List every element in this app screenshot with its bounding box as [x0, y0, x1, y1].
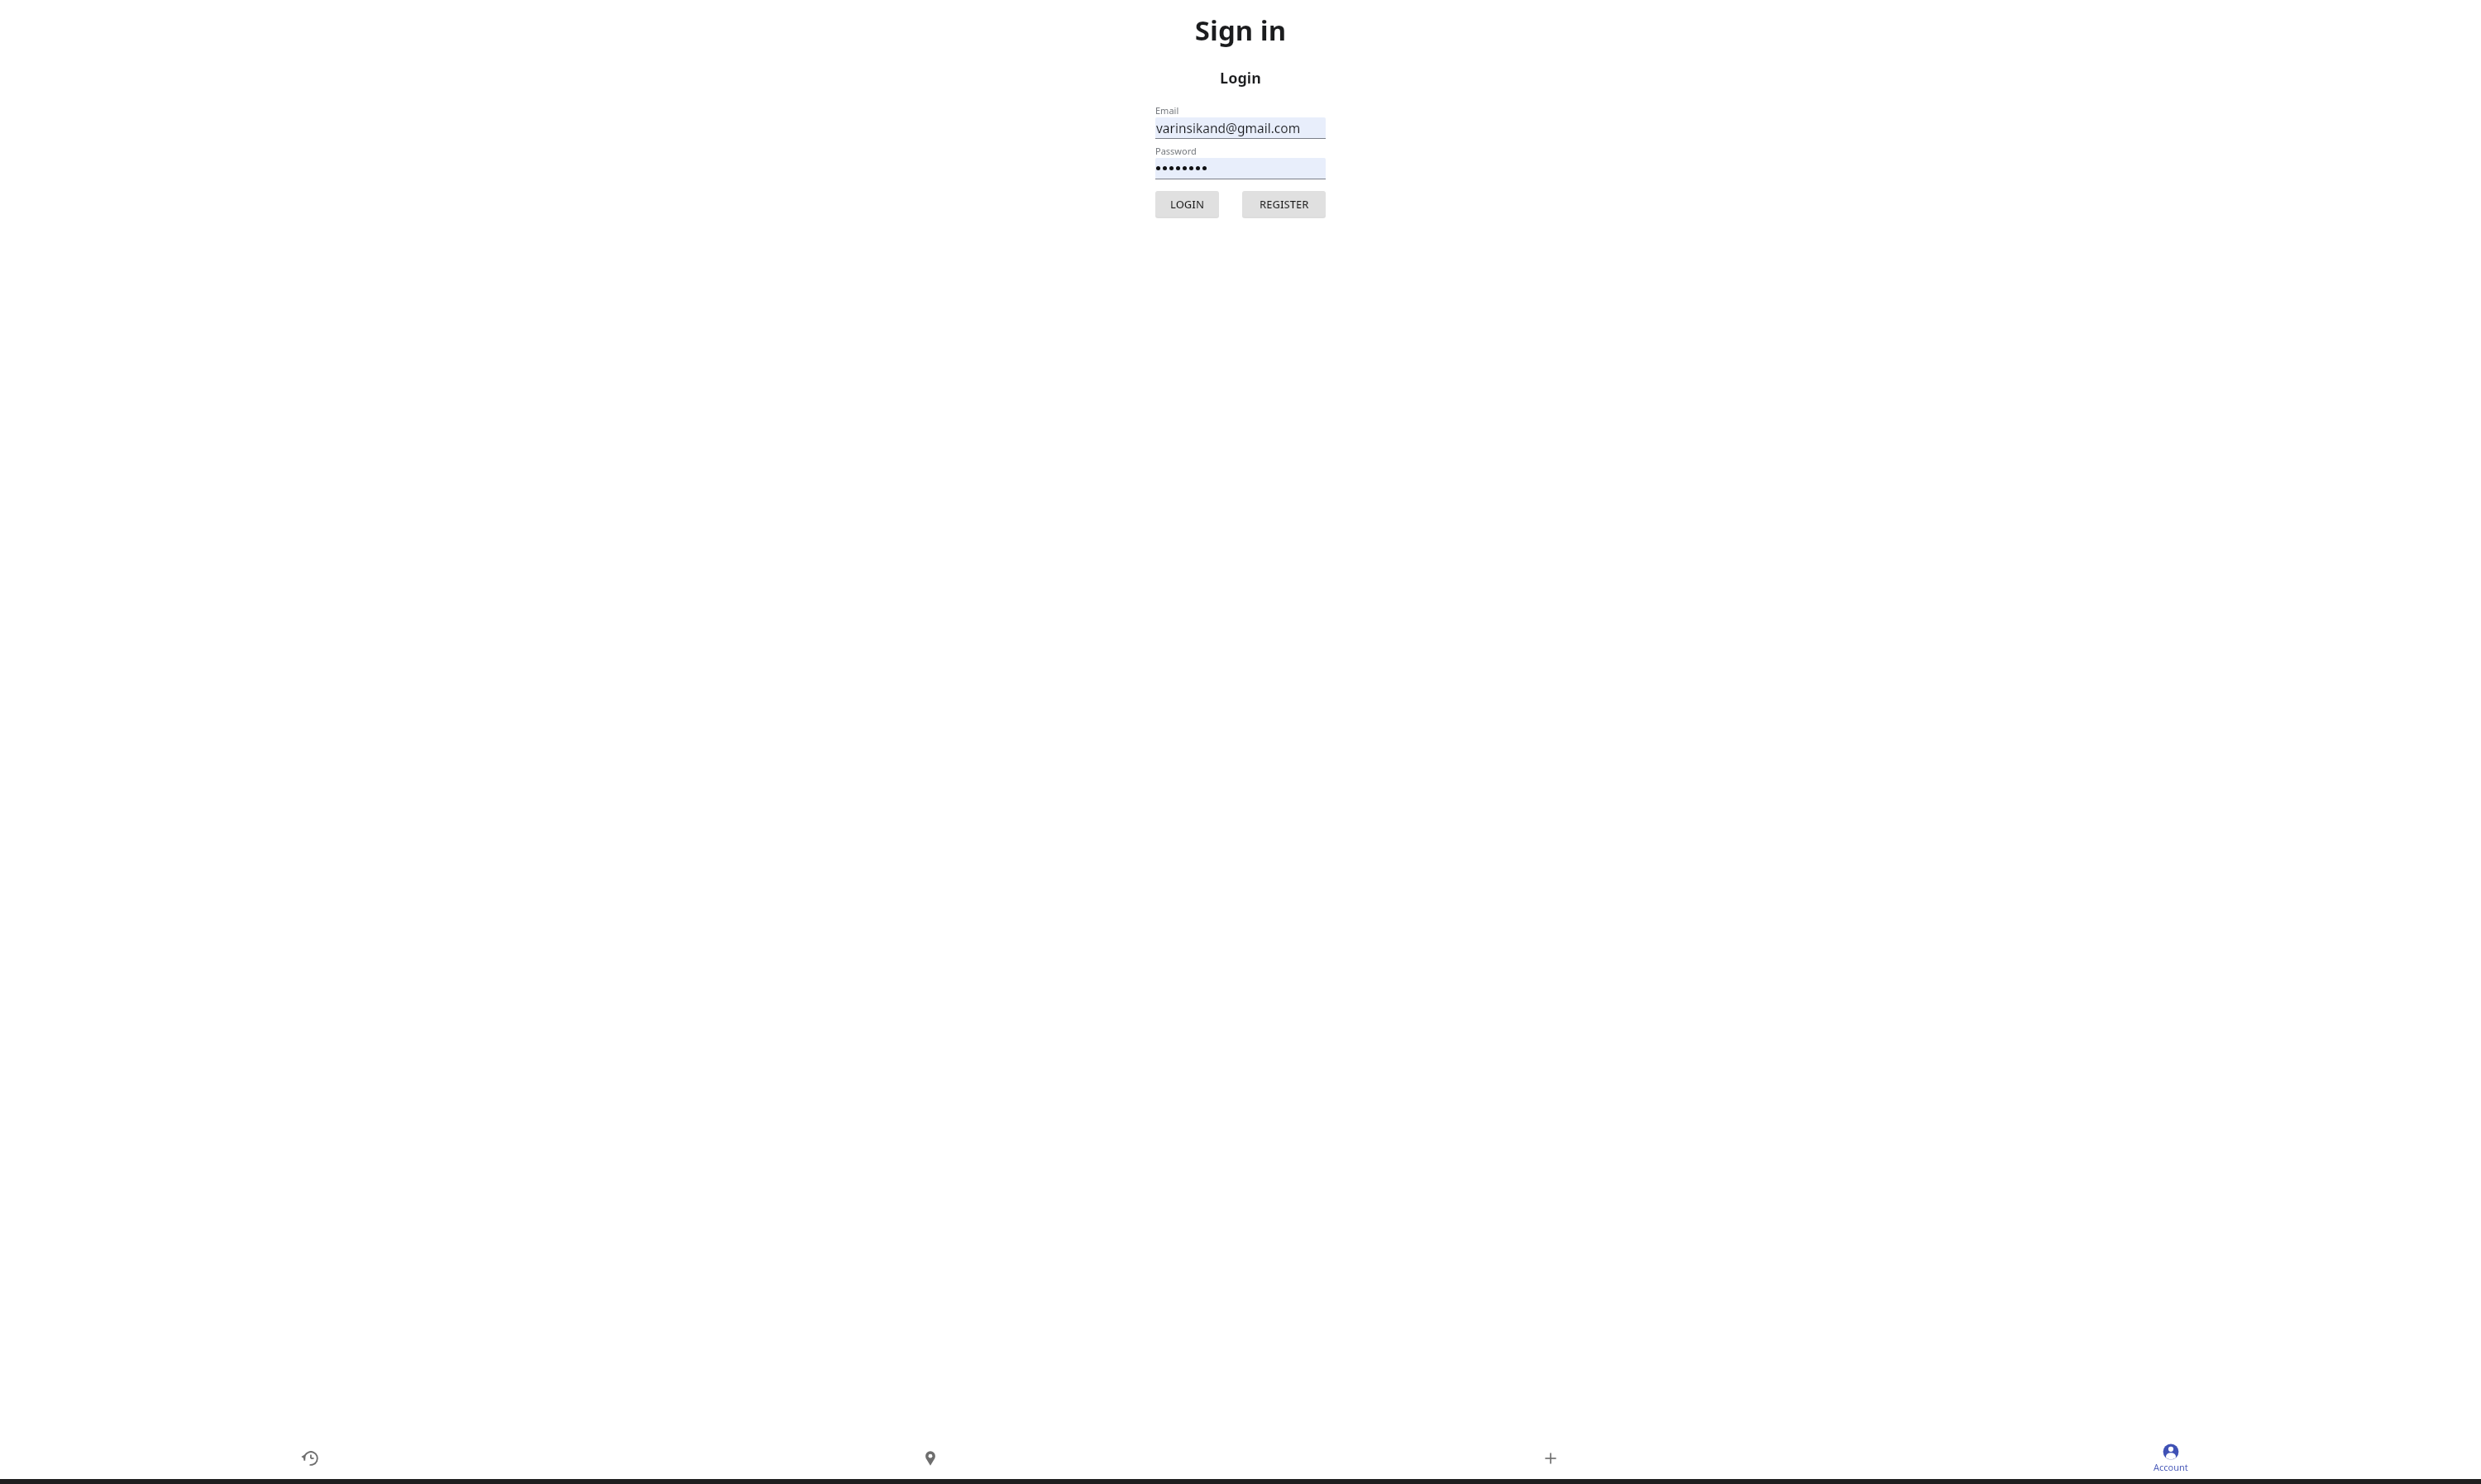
staticText: Account — [2154, 1461, 2188, 1473]
button[interactable] — [1155, 158, 1326, 179]
staticText: REGISTER — [1260, 197, 1309, 212]
staticText: varinsikand@gmail.com — [1156, 119, 1301, 136]
button[interactable]: History — [0, 1438, 620, 1479]
button[interactable]: LOGIN — [1155, 191, 1219, 218]
staticText: Login — [0, 68, 2481, 88]
button[interactable]: varinsikand@gmail.com — [1155, 117, 1326, 139]
button[interactable]: REGISTER — [1242, 191, 1326, 218]
button[interactable]: Add — [1240, 1438, 1861, 1479]
staticText: Password — [1155, 145, 1197, 157]
button[interactable]: Account — [1861, 1438, 2481, 1479]
staticText: Email — [1155, 104, 1179, 117]
staticText: Sign in — [0, 12, 2481, 49]
staticText: LOGIN — [1170, 197, 1205, 212]
button[interactable]: Places — [620, 1438, 1240, 1479]
